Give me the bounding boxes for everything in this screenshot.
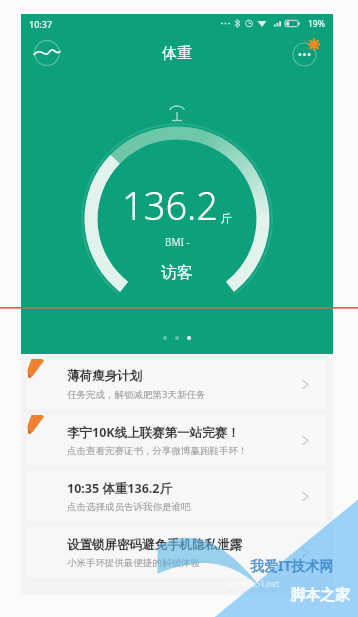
- staticText: 136.2: [122, 179, 219, 231]
- staticText: 小米手环提供最便捷的解锁体验: [67, 557, 200, 569]
- button[interactable]: 薄荷瘦身计划: [27, 359, 327, 410]
- button[interactable]: Heart rate: [33, 39, 61, 67]
- button[interactable]: 李宁10K线上联赛第一站完赛！: [27, 415, 327, 466]
- staticText: 薄荷瘦身计划: [67, 368, 142, 384]
- staticText: 脚本之家: [290, 586, 350, 605]
- staticText: BMI -: [165, 235, 190, 249]
- staticText: 点击选择成员告诉我你是谁吧: [67, 501, 191, 513]
- staticText: 设置锁屏密码避免手机隐私泄露: [67, 537, 242, 553]
- staticText: www.jb51.net: [228, 578, 280, 589]
- staticText: 10:37: [29, 18, 53, 30]
- button[interactable]: 设置锁屏密码避免手机隐私泄露: [27, 527, 327, 578]
- staticText: 点击查看完赛证书，分享微博赢跑鞋手环！: [67, 445, 248, 457]
- staticText: 19%: [308, 18, 325, 30]
- staticText: 斤: [221, 211, 232, 225]
- staticText: 10:35 体重136.2斤: [67, 480, 172, 497]
- button[interactable]: More options: [291, 38, 321, 68]
- button[interactable]: 10:35 体重136.2斤: [27, 471, 327, 522]
- staticText: 任务完成，解锁减肥第3天新任务: [67, 388, 206, 401]
- staticText: 李宁10K线上联赛第一站完赛！: [67, 424, 240, 441]
- staticText: 体重: [162, 44, 192, 63]
- staticText: 我爱IT技术网: [250, 556, 334, 575]
- staticText: 访客: [161, 263, 193, 283]
